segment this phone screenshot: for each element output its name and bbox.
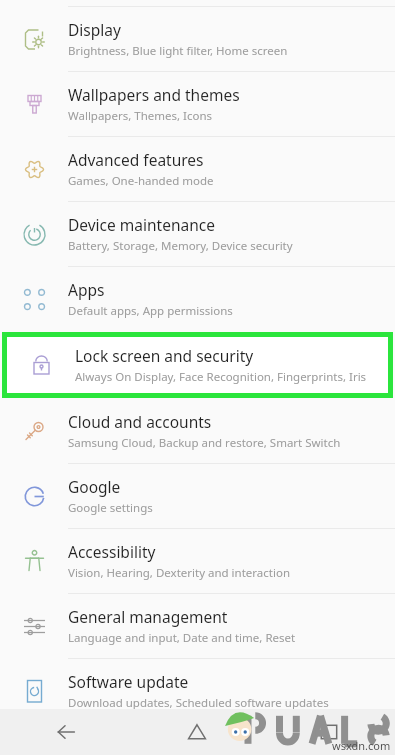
staticText: Display — [68, 19, 121, 40]
button[interactable]: General management — [0, 594, 395, 658]
button[interactable]: Lock screen and security — [7, 337, 388, 393]
button[interactable]: Software update — [0, 659, 395, 723]
staticText: Vision, Hearing, Dexterity and interacti… — [68, 565, 291, 581]
button[interactable]: Advanced features — [0, 137, 395, 201]
staticText: Battery, Storage, Memory, Device securit… — [68, 238, 293, 254]
button[interactable]: Device maintenance — [0, 202, 395, 266]
button[interactable]: Back — [0, 709, 131, 755]
button[interactable]: Recent apps — [263, 709, 395, 755]
staticText: Google — [68, 476, 121, 497]
button[interactable]: Google — [0, 464, 395, 528]
staticText: Software update — [68, 671, 189, 692]
staticText: Wallpapers and themes — [68, 84, 240, 105]
button[interactable]: Cloud and accounts — [0, 399, 395, 463]
staticText: wsxdn.com — [332, 738, 391, 753]
staticText: Advanced features — [68, 149, 204, 170]
button[interactable]: Display — [0, 7, 395, 71]
staticText: Device maintenance — [68, 214, 215, 235]
staticText: Lock screen and security — [75, 345, 254, 366]
staticText: General management — [68, 606, 228, 627]
staticText: Games, One-handed mode — [68, 173, 214, 189]
staticText: Wallpapers, Themes, Icons — [68, 108, 213, 124]
staticText: Brightness, Blue light filter, Home scre… — [68, 43, 288, 59]
staticText: Accessibility — [68, 541, 156, 562]
staticText: Download updates, Scheduled software upd… — [68, 695, 329, 711]
button[interactable]: Apps — [0, 267, 395, 331]
staticText: Samsung Cloud, Backup and restore, Smart… — [68, 435, 341, 451]
button[interactable]: Wallpapers and themes — [0, 72, 395, 136]
button[interactable]: Home — [131, 709, 263, 755]
staticText: Default apps, App permissions — [68, 303, 233, 319]
button[interactable]: Accessibility — [0, 529, 395, 593]
staticText: Language and input, Date and time, Reset — [68, 630, 296, 646]
staticText: Apps — [68, 279, 105, 300]
staticText: Always On Display, Face Recognition, Fin… — [75, 369, 367, 385]
staticText: Google settings — [68, 500, 153, 516]
staticText: Cloud and accounts — [68, 411, 212, 432]
